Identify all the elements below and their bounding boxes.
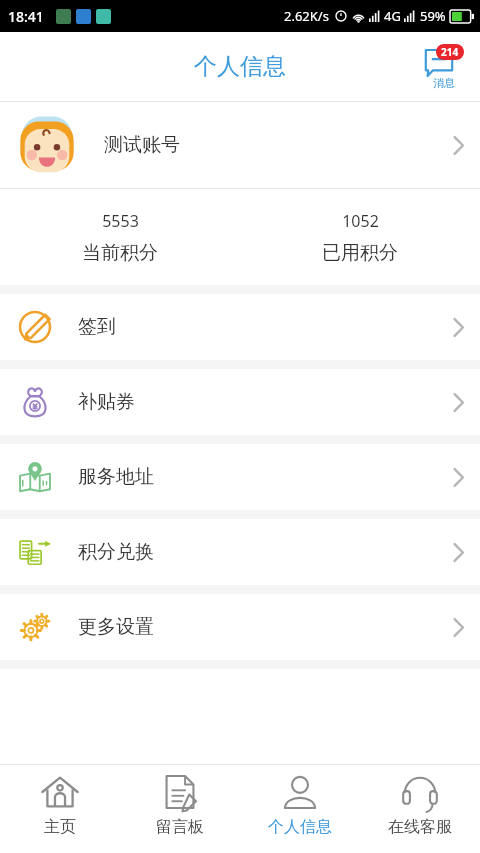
staticText: 59%: [420, 7, 446, 25]
other: 主页: [39, 771, 81, 813]
staticText: 2.62K/s: [284, 7, 329, 25]
staticText: 在线客服: [388, 817, 452, 837]
staticText: 测试账号: [104, 133, 180, 157]
button[interactable]: 积分兑换: [0, 519, 480, 585]
staticText: 已用积分: [322, 241, 398, 265]
staticText: 1052: [342, 210, 379, 232]
staticText: 服务地址: [78, 465, 154, 489]
staticText: 消息: [433, 76, 455, 90]
button[interactable]: 消息: [420, 42, 468, 92]
staticText: 当前积分: [82, 241, 158, 265]
staticText: 5553: [102, 210, 139, 232]
button[interactable]: 个人信息: [240, 765, 360, 853]
button[interactable]: 在线客服: [360, 765, 480, 853]
other: 在线客服: [399, 771, 441, 813]
staticText: 补贴券: [78, 390, 135, 414]
staticText: 18:41: [8, 7, 44, 26]
staticText: 积分兑换: [78, 540, 154, 564]
button[interactable]: 测试账号: [0, 102, 480, 188]
button[interactable]: 补贴券: [0, 369, 480, 435]
staticText: 签到: [78, 315, 116, 339]
button[interactable]: 主页: [0, 765, 120, 853]
other: 个人信息: [279, 771, 321, 813]
button[interactable]: 5553: [0, 189, 240, 285]
staticText: 个人信息: [268, 817, 332, 837]
staticText: 主页: [44, 817, 76, 837]
button[interactable]: 服务地址: [0, 444, 480, 510]
staticText: 更多设置: [78, 615, 154, 639]
staticText: 留言板: [156, 817, 204, 837]
other: 留言板: [159, 771, 201, 813]
button[interactable]: 1052: [240, 189, 480, 285]
button[interactable]: 留言板: [120, 765, 240, 853]
staticText: 个人信息: [194, 52, 286, 81]
button[interactable]: 签到: [0, 294, 480, 360]
staticText: 214: [441, 45, 459, 59]
button[interactable]: 更多设置: [0, 594, 480, 660]
staticText: 4G: [384, 7, 401, 25]
